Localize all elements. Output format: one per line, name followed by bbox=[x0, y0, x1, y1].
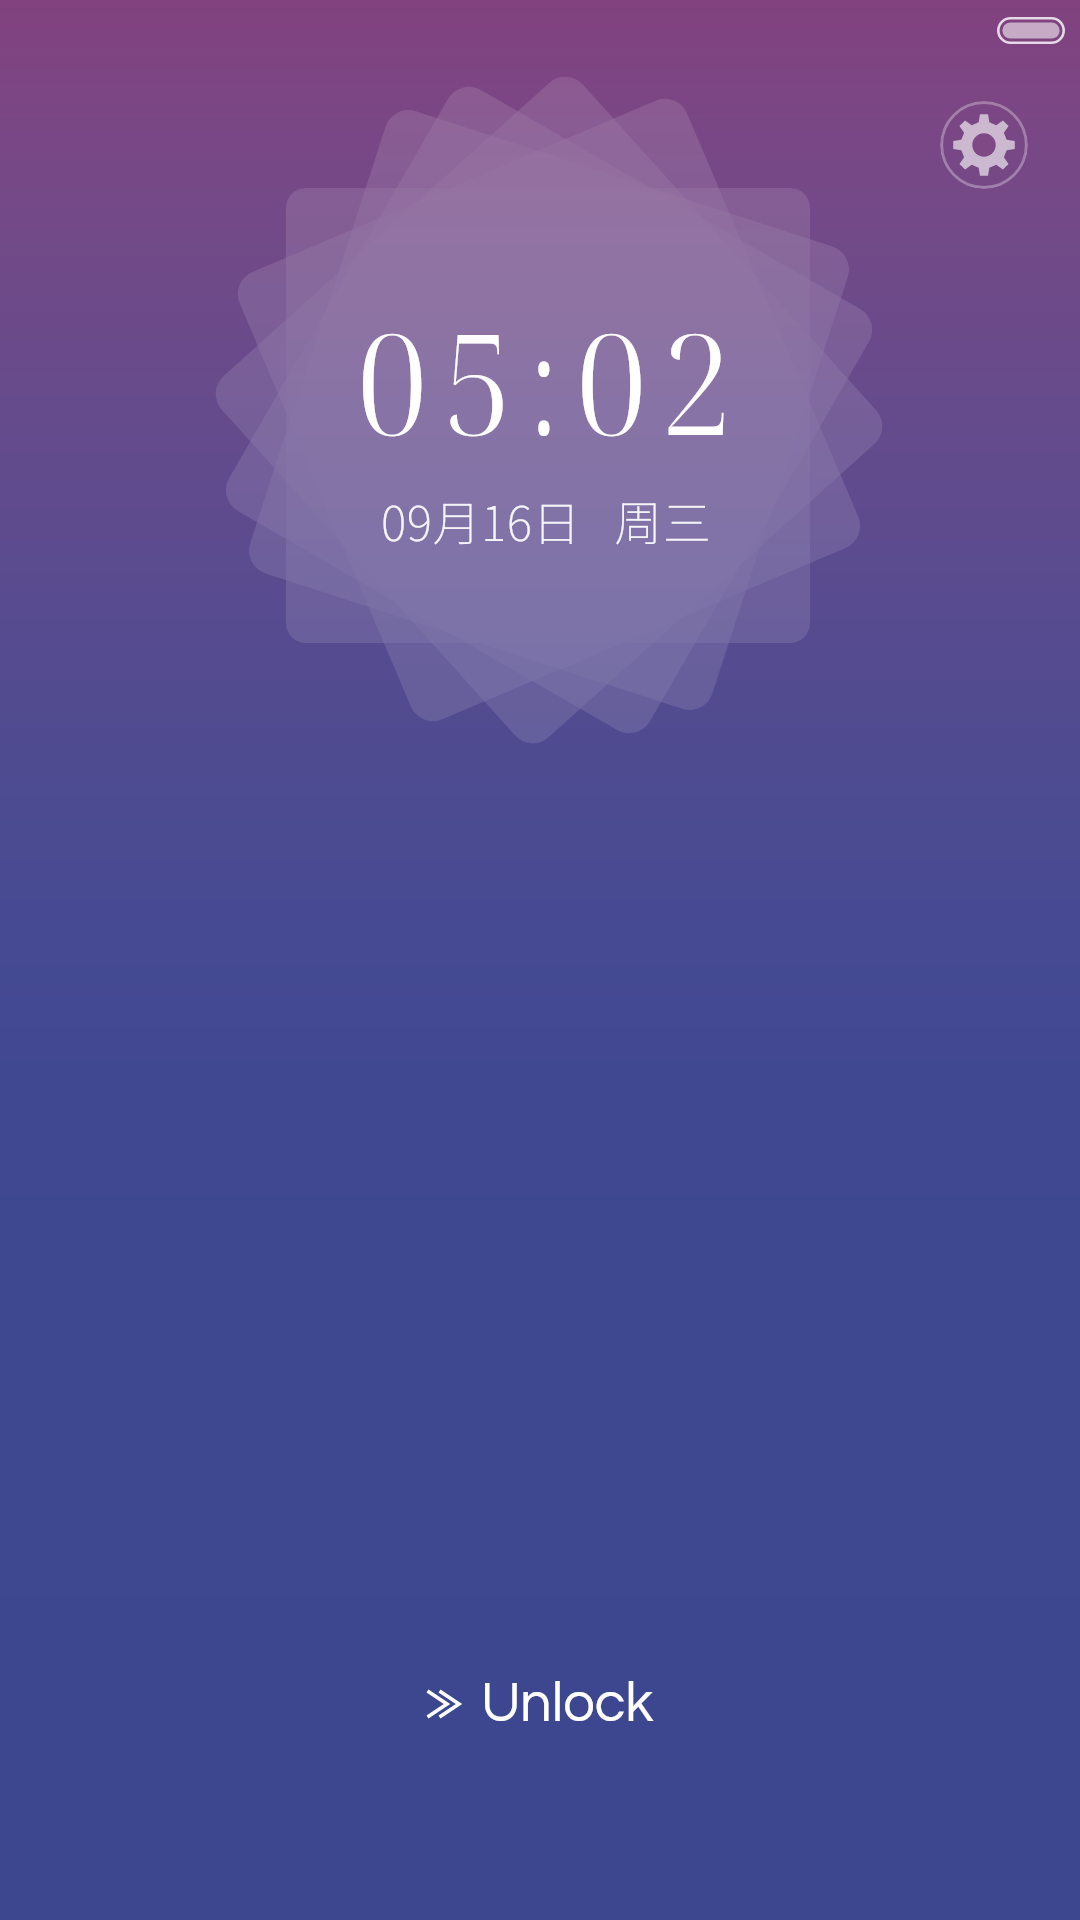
other: Battery bbox=[997, 17, 1065, 44]
staticText: 09月16日 周三 bbox=[381, 485, 712, 555]
staticText: Unlock bbox=[481, 1675, 654, 1733]
staticText: 05:02 bbox=[357, 286, 747, 475]
button[interactable]: Unlock bbox=[396, 1655, 684, 1753]
button[interactable]: Settings bbox=[940, 101, 1028, 189]
